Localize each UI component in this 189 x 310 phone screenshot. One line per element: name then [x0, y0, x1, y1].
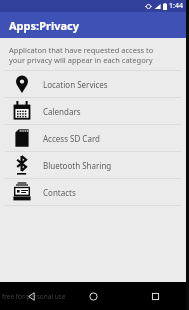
staticText: Applicaton that have requested access to… — [9, 45, 170, 65]
staticText: Calendars — [43, 106, 81, 117]
button[interactable]: Back — [0, 282, 62, 310]
button[interactable]: Location Services — [0, 71, 186, 98]
staticText: 1:44 — [169, 1, 183, 11]
button[interactable]: Bluetooth Sharing — [0, 152, 186, 179]
button[interactable]: Calendars — [0, 98, 186, 125]
button[interactable]: Contacts — [0, 179, 186, 206]
button[interactable]: Access SD Card — [0, 125, 186, 152]
button[interactable]: Recent apps — [124, 282, 186, 310]
staticText: Contacts — [43, 187, 76, 198]
staticText: Access SD Card — [43, 133, 100, 144]
staticText: free for personal use — [2, 292, 66, 301]
button[interactable]: Home — [62, 282, 124, 310]
staticText: Apps:Privacy — [9, 18, 79, 33]
staticText: Location Services — [43, 79, 108, 90]
staticText: Bluetooth Sharing — [43, 160, 112, 171]
